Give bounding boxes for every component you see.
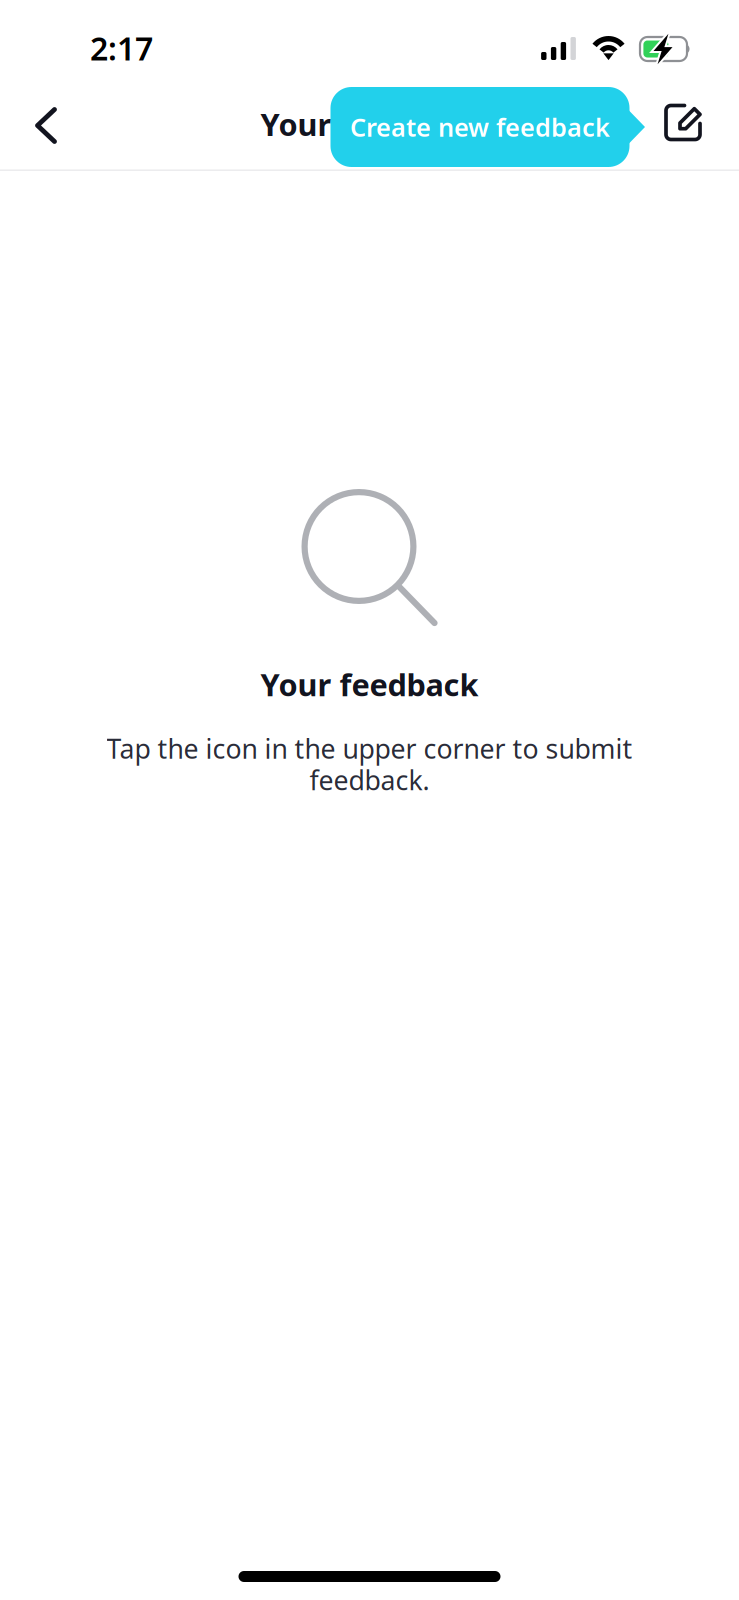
staticText: Your feedback <box>260 664 478 705</box>
staticText: Create new feedback <box>350 110 610 144</box>
staticText: feedback. <box>309 762 429 797</box>
button[interactable]: Back <box>0 79 82 169</box>
button[interactable]: Create new feedback <box>638 79 739 169</box>
staticText: 2:17 <box>90 27 153 69</box>
staticText: Your feedback <box>260 104 478 144</box>
staticText: Tap the icon in the upper corner to subm… <box>106 731 632 766</box>
